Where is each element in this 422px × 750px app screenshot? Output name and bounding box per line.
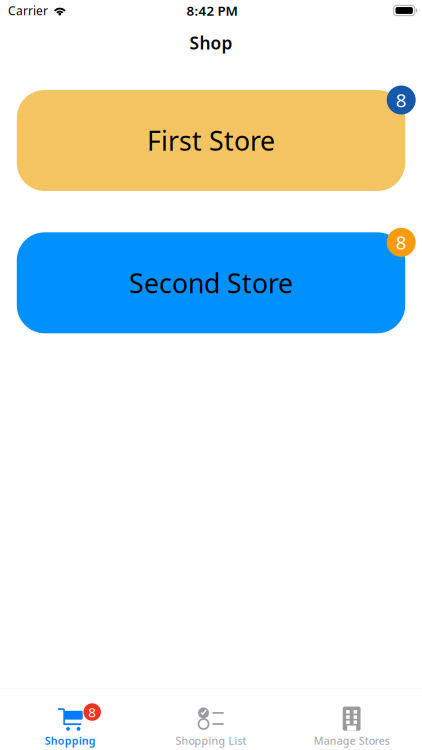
staticText: 8:42 PM [186,2,237,19]
staticText: 8 [88,703,96,721]
button[interactable]: Shopping [0,689,141,750]
staticText: Second Store [129,265,293,300]
staticText: Manage Stores [314,733,390,748]
staticText: First Store [147,123,275,158]
staticText: 8 [396,88,407,112]
button[interactable]: Shopping List [141,689,281,750]
staticText: Shop [189,31,232,54]
staticText: 8 [396,230,407,255]
button[interactable]: First Store [17,90,405,191]
staticText: Shopping [45,733,96,748]
staticText: Shopping List [175,733,246,748]
button[interactable]: Manage Stores [281,689,422,750]
button[interactable]: Second Store [17,232,405,333]
staticText: Carrier [8,2,48,18]
